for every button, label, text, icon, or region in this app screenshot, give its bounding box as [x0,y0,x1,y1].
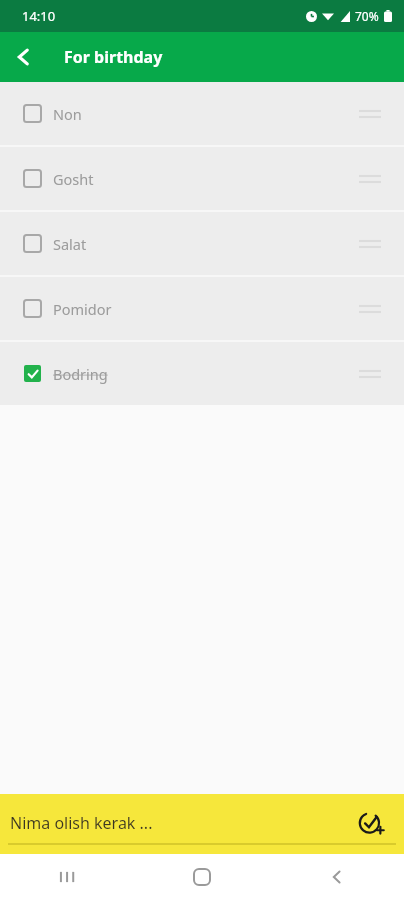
button[interactable]: Home [134,854,269,900]
button[interactable]: Add task [350,803,392,845]
staticText: 70% [355,8,379,24]
button[interactable]: Salat [0,212,404,275]
button[interactable]: Back [269,854,404,900]
button[interactable]: Nima olish kerak ... [0,794,404,854]
button[interactable]: Reorder [346,155,394,203]
staticText: 14:10 [22,7,56,25]
button[interactable]: Reorder [346,90,394,138]
staticText: Pomidor [53,299,112,319]
button[interactable]: Recents [0,854,134,900]
button[interactable]: Bodring [0,342,404,405]
staticText: Nima olish kerak ... [10,812,153,834]
button[interactable]: Gosht [0,147,404,210]
staticText: For birthday [64,46,163,68]
staticText: Bodring [53,364,108,384]
button[interactable]: Non [0,82,404,145]
button[interactable]: Reorder [346,350,394,398]
staticText: Salat [53,234,87,254]
button[interactable]: Reorder [346,220,394,268]
button[interactable]: Back [0,33,48,81]
button[interactable]: Pomidor [0,277,404,340]
staticText: Non [53,104,82,124]
button[interactable]: Reorder [346,285,394,333]
staticText: Gosht [53,169,94,189]
